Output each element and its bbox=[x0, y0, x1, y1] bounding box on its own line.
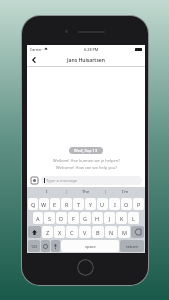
button[interactable]: U bbox=[97, 198, 108, 210]
button[interactable]: P bbox=[133, 198, 144, 210]
staticText: return bbox=[126, 244, 138, 249]
button[interactable]: A bbox=[33, 212, 43, 224]
button[interactable]: Back bbox=[27, 53, 41, 67]
button[interactable]: Backspace bbox=[131, 226, 144, 238]
staticText: 6:28 PM bbox=[84, 47, 99, 52]
button[interactable]: V bbox=[79, 226, 91, 238]
staticText: K bbox=[120, 215, 124, 222]
staticText: Welkom! Hoe kunnen we je helpen? bbox=[53, 158, 120, 163]
button[interactable]: space bbox=[61, 240, 119, 252]
staticText: Type a message bbox=[46, 178, 78, 184]
staticText: N bbox=[109, 229, 114, 236]
staticText: J bbox=[109, 215, 111, 222]
staticText: R bbox=[65, 201, 69, 208]
button[interactable]: Q bbox=[28, 198, 38, 210]
staticText: B bbox=[96, 229, 100, 236]
button[interactable]: E bbox=[50, 198, 60, 210]
button[interactable]: I bbox=[109, 198, 120, 210]
button[interactable]: I bbox=[28, 188, 66, 196]
button[interactable]: B bbox=[92, 226, 104, 238]
button[interactable]: T bbox=[73, 198, 84, 210]
button[interactable]: S bbox=[44, 212, 55, 224]
staticText: Carrier bbox=[30, 47, 42, 52]
staticText: Wed, Sep 13 bbox=[74, 148, 98, 153]
staticText: F bbox=[72, 215, 75, 222]
button[interactable]: Dictate bbox=[51, 240, 60, 252]
button[interactable]: The bbox=[67, 188, 105, 196]
button[interactable]: I'm bbox=[106, 188, 144, 196]
button[interactable]: H bbox=[92, 212, 103, 224]
staticText: T bbox=[77, 201, 81, 208]
staticText: 123 bbox=[31, 244, 38, 249]
staticText: O bbox=[124, 201, 129, 208]
button[interactable]: C bbox=[66, 226, 78, 238]
staticText: X bbox=[58, 229, 62, 236]
button[interactable]: Home bbox=[77, 259, 94, 276]
button[interactable]: L bbox=[128, 212, 139, 224]
staticText: space bbox=[85, 244, 96, 249]
button[interactable]: F bbox=[68, 212, 79, 224]
staticText: U bbox=[100, 201, 105, 208]
staticText: H bbox=[95, 215, 100, 222]
staticText: S bbox=[48, 215, 52, 222]
button[interactable]: Numbers bbox=[28, 240, 40, 252]
button[interactable]: J bbox=[104, 212, 115, 224]
staticText: A bbox=[36, 215, 40, 222]
button[interactable]: Type a message bbox=[44, 176, 139, 185]
staticText: G bbox=[83, 215, 88, 222]
staticText: V bbox=[83, 229, 87, 236]
button[interactable]: G bbox=[80, 212, 91, 224]
staticText: I'm bbox=[122, 189, 129, 195]
staticText: E bbox=[53, 201, 57, 208]
button[interactable]: K bbox=[116, 212, 127, 224]
button[interactable]: M bbox=[118, 226, 130, 238]
staticText: I bbox=[114, 201, 116, 208]
staticText: M bbox=[122, 229, 127, 236]
staticText: Y bbox=[89, 201, 93, 208]
staticText: D bbox=[59, 215, 64, 222]
button[interactable]: N bbox=[105, 226, 117, 238]
button[interactable]: Z bbox=[42, 226, 53, 238]
button[interactable]: Shift bbox=[28, 226, 41, 238]
button[interactable]: Emoji bbox=[41, 240, 50, 252]
staticText: P bbox=[137, 201, 141, 208]
button[interactable]: Add attachment bbox=[30, 176, 38, 184]
button[interactable]: return bbox=[120, 240, 144, 252]
staticText: W bbox=[41, 201, 47, 208]
staticText: Jans Huisartsen bbox=[67, 57, 105, 64]
button[interactable]: X bbox=[54, 226, 65, 238]
button[interactable]: D bbox=[56, 212, 67, 224]
staticText: Z bbox=[46, 229, 50, 236]
button[interactable]: Y bbox=[85, 198, 96, 210]
staticText: L bbox=[132, 215, 135, 222]
staticText: I bbox=[46, 189, 48, 195]
staticText: C bbox=[70, 229, 74, 236]
button[interactable]: R bbox=[61, 198, 72, 210]
staticText: Welcome! How can we help you? bbox=[56, 165, 117, 170]
button[interactable]: O bbox=[121, 198, 132, 210]
button[interactable]: W bbox=[39, 198, 49, 210]
staticText: The bbox=[82, 189, 90, 195]
staticText: Q bbox=[31, 201, 36, 208]
